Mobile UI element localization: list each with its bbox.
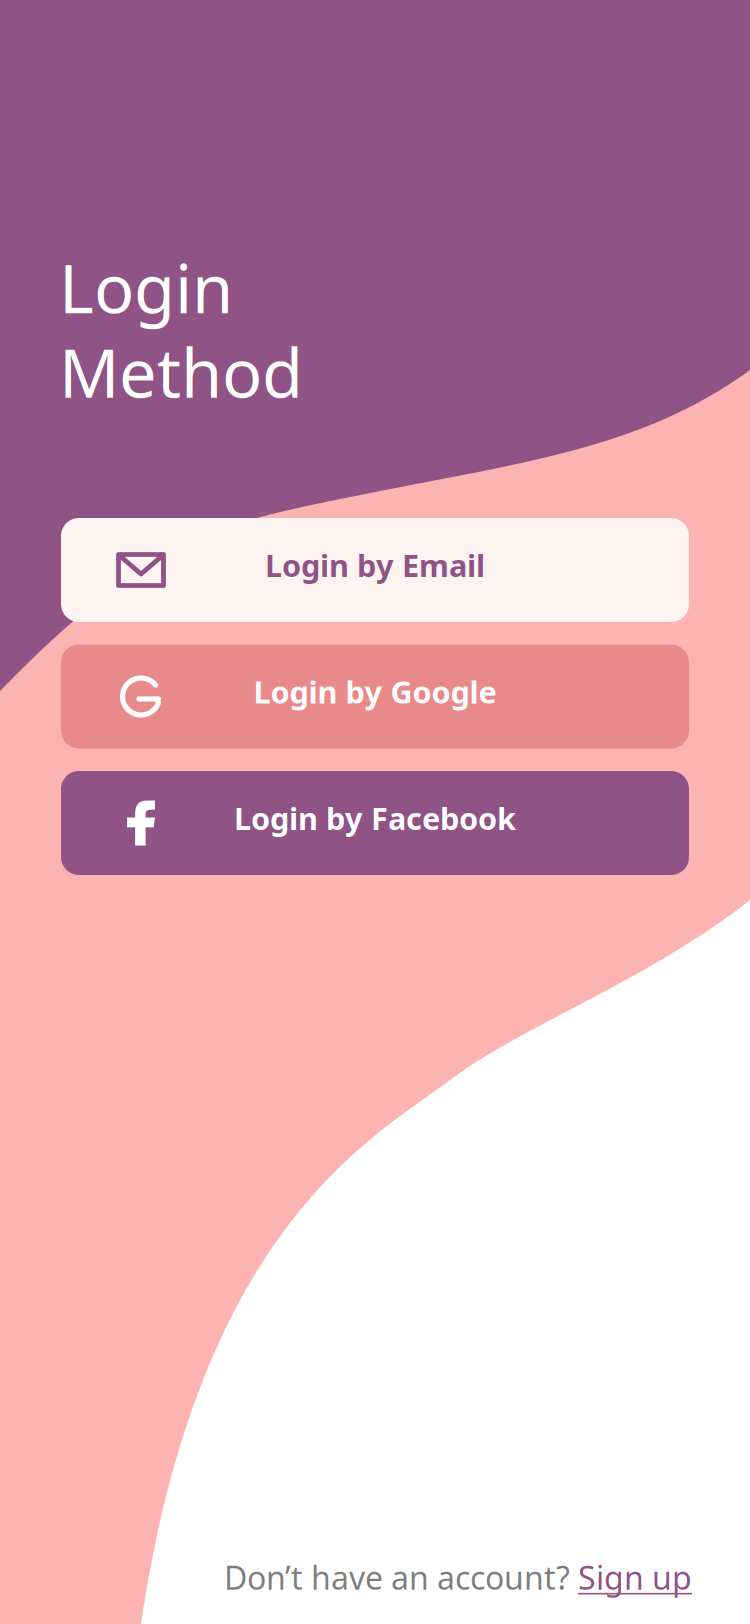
button[interactable]: Login by Email [61, 518, 689, 622]
staticText: Method [59, 327, 303, 416]
staticText: Login [59, 243, 233, 331]
staticText: Login by Email [265, 545, 485, 585]
staticText: Login by Facebook [234, 798, 516, 838]
button[interactable]: Sign up [578, 1556, 692, 1598]
button[interactable]: Login by Facebook [61, 771, 689, 875]
staticText: Login by Google [253, 671, 496, 712]
staticText: Sign up [578, 1556, 692, 1598]
staticText: Don’t have an account? [224, 1556, 578, 1598]
button[interactable]: Login by Google [61, 644, 689, 748]
